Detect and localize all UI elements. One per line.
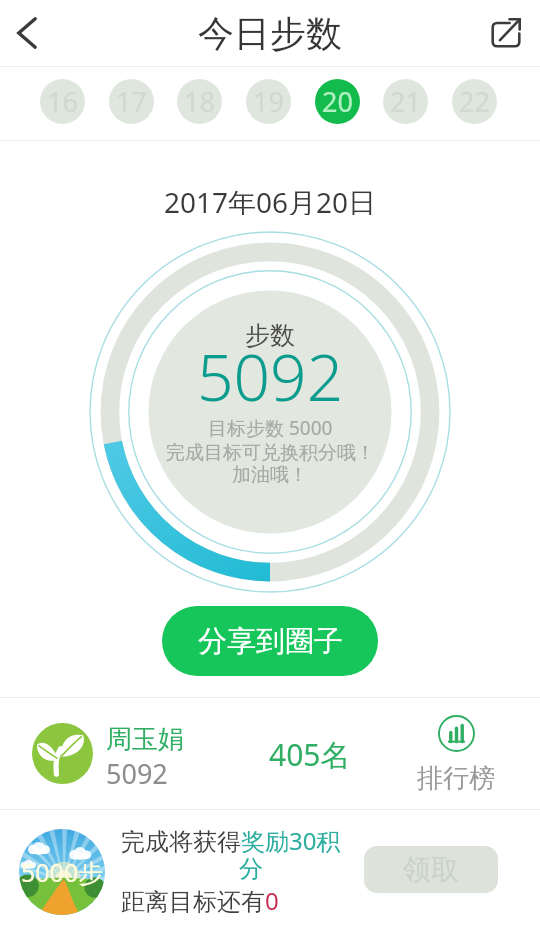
button[interactable]: 21 (383, 79, 428, 124)
button[interactable]: 22 (452, 79, 497, 124)
staticText: 排行榜 (417, 762, 495, 795)
button[interactable]: 17 (109, 79, 154, 124)
staticText: 完成目标可兑换积分哦！ (166, 441, 375, 465)
staticText: 19 (253, 83, 284, 120)
staticText: 分 (239, 854, 263, 884)
staticText: 5000步 (21, 855, 104, 889)
staticText: 距离目标还有0 (121, 884, 279, 917)
staticText: 17 (116, 83, 147, 120)
staticText: 5092 (106, 755, 168, 792)
staticText: 21 (390, 83, 421, 120)
button[interactable]: 分享到圈子 (162, 606, 378, 676)
staticText: 22 (459, 83, 490, 120)
button[interactable]: Share (476, 3, 536, 63)
staticText: 18 (184, 83, 215, 120)
staticText: 2017年06月20日 (164, 183, 377, 215)
staticText: 20 (322, 83, 353, 120)
button[interactable]: 19 (246, 79, 291, 124)
staticText: 领取 (403, 852, 459, 887)
staticText: 16 (47, 83, 78, 120)
button[interactable]: 周玉娟 (0, 698, 540, 809)
staticText: 步数 (245, 320, 295, 351)
staticText: 分享到圈子 (198, 623, 343, 660)
staticText: 目标步数 5000 (208, 415, 333, 441)
staticText: 5092 (197, 333, 344, 420)
staticText: 今日步数 (198, 11, 342, 56)
staticText: 完成将获得奖励30积 (121, 824, 341, 857)
button[interactable]: 18 (177, 79, 222, 124)
button[interactable]: 领取 (364, 846, 498, 893)
button[interactable]: 16 (40, 79, 85, 124)
staticText: 405名 (269, 734, 351, 775)
staticText: 周玉娟 (106, 723, 184, 756)
button[interactable]: 20 (315, 79, 360, 124)
staticText: 加油哦！ (232, 463, 308, 487)
button[interactable]: Back (0, 3, 60, 63)
